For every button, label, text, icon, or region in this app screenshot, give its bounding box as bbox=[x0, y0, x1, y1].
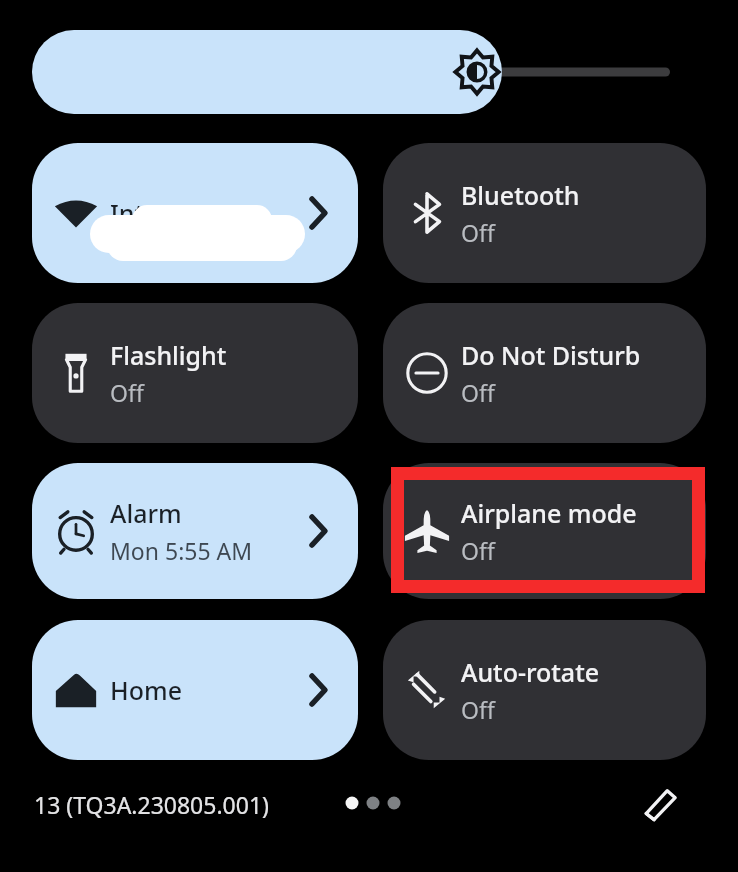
staticText: Off bbox=[110, 377, 144, 408]
button[interactable]: Edit tiles bbox=[640, 781, 684, 825]
staticText: Off bbox=[461, 377, 495, 408]
button[interactable]: Brightness bbox=[32, 30, 670, 114]
button[interactable]: Alarm bbox=[32, 463, 358, 599]
staticText: Auto-rotate bbox=[461, 655, 600, 689]
staticText: Mon 5:55 AM bbox=[110, 535, 253, 566]
staticText: Internet bbox=[110, 196, 209, 230]
staticText: Home bbox=[110, 673, 183, 707]
staticText: Off bbox=[461, 217, 495, 248]
staticText: Alarm bbox=[110, 496, 182, 530]
staticText: Do Not Disturb bbox=[461, 338, 641, 372]
button[interactable]: Home bbox=[32, 620, 358, 760]
button[interactable]: Airplane mode bbox=[383, 463, 706, 599]
staticText: Off bbox=[461, 535, 495, 566]
button[interactable]: Flashlight bbox=[32, 303, 358, 443]
button[interactable]: Do Not Disturb bbox=[383, 303, 706, 443]
staticText: Flashlight bbox=[110, 338, 227, 372]
button[interactable]: Internet bbox=[32, 143, 358, 283]
staticText: Bluetooth bbox=[461, 178, 580, 212]
staticText: Off bbox=[461, 694, 495, 725]
staticText: Airplane mode bbox=[461, 496, 637, 530]
button[interactable]: Bluetooth bbox=[383, 143, 706, 283]
staticText: 13 (TQ3A.230805.001) bbox=[34, 789, 269, 820]
button[interactable]: Auto-rotate bbox=[383, 620, 706, 760]
